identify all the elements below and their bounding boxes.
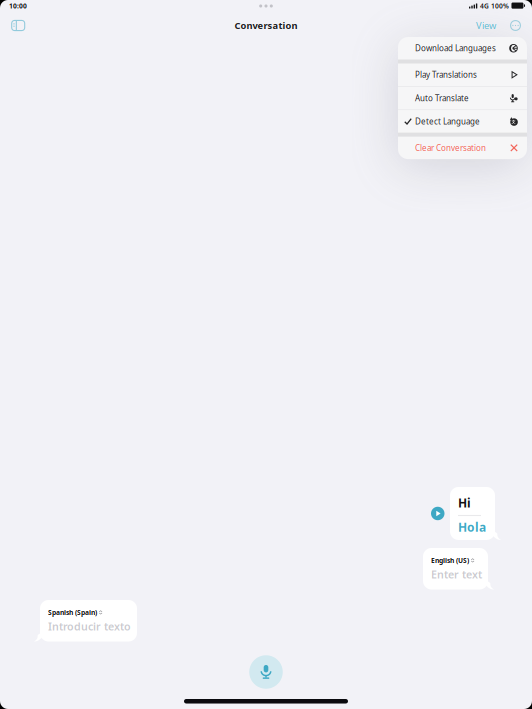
button[interactable]: Spanish (Spain) (40, 600, 137, 641)
staticText: Auto Translate (415, 93, 469, 103)
staticText: Hola (458, 519, 486, 535)
staticText: Clear Conversation (415, 142, 486, 153)
button[interactable]: English (US) (423, 548, 488, 589)
staticText: Enter text (431, 567, 482, 582)
staticText: View (476, 19, 496, 32)
staticText: Spanish (Spain) (48, 608, 97, 617)
staticText: 10:00 (9, 2, 27, 10)
button[interactable]: Play translation (431, 507, 444, 520)
button[interactable]: Auto Translate (398, 87, 527, 109)
staticText: Conversation (234, 19, 297, 32)
button[interactable]: Download Languages (398, 37, 527, 59)
staticText: Download Languages (415, 43, 496, 53)
staticText: English (US) (431, 556, 469, 565)
staticText: 4G 100% (480, 2, 509, 10)
staticText: Hi (458, 495, 471, 511)
staticText: Introducir texto (48, 619, 131, 634)
staticText: Play Translations (415, 69, 477, 80)
button[interactable]: Show sidebar (0, 16, 33, 35)
button[interactable]: Play Translations (398, 63, 527, 86)
button[interactable]: More options (496, 16, 532, 35)
button[interactable]: Record (245, 651, 287, 693)
button[interactable]: Clear Conversation (398, 137, 527, 159)
button[interactable]: View (470, 15, 496, 36)
staticText: 文 (511, 119, 515, 124)
button[interactable]: Detect Language (398, 110, 527, 133)
staticText: Detect Language (415, 116, 480, 127)
